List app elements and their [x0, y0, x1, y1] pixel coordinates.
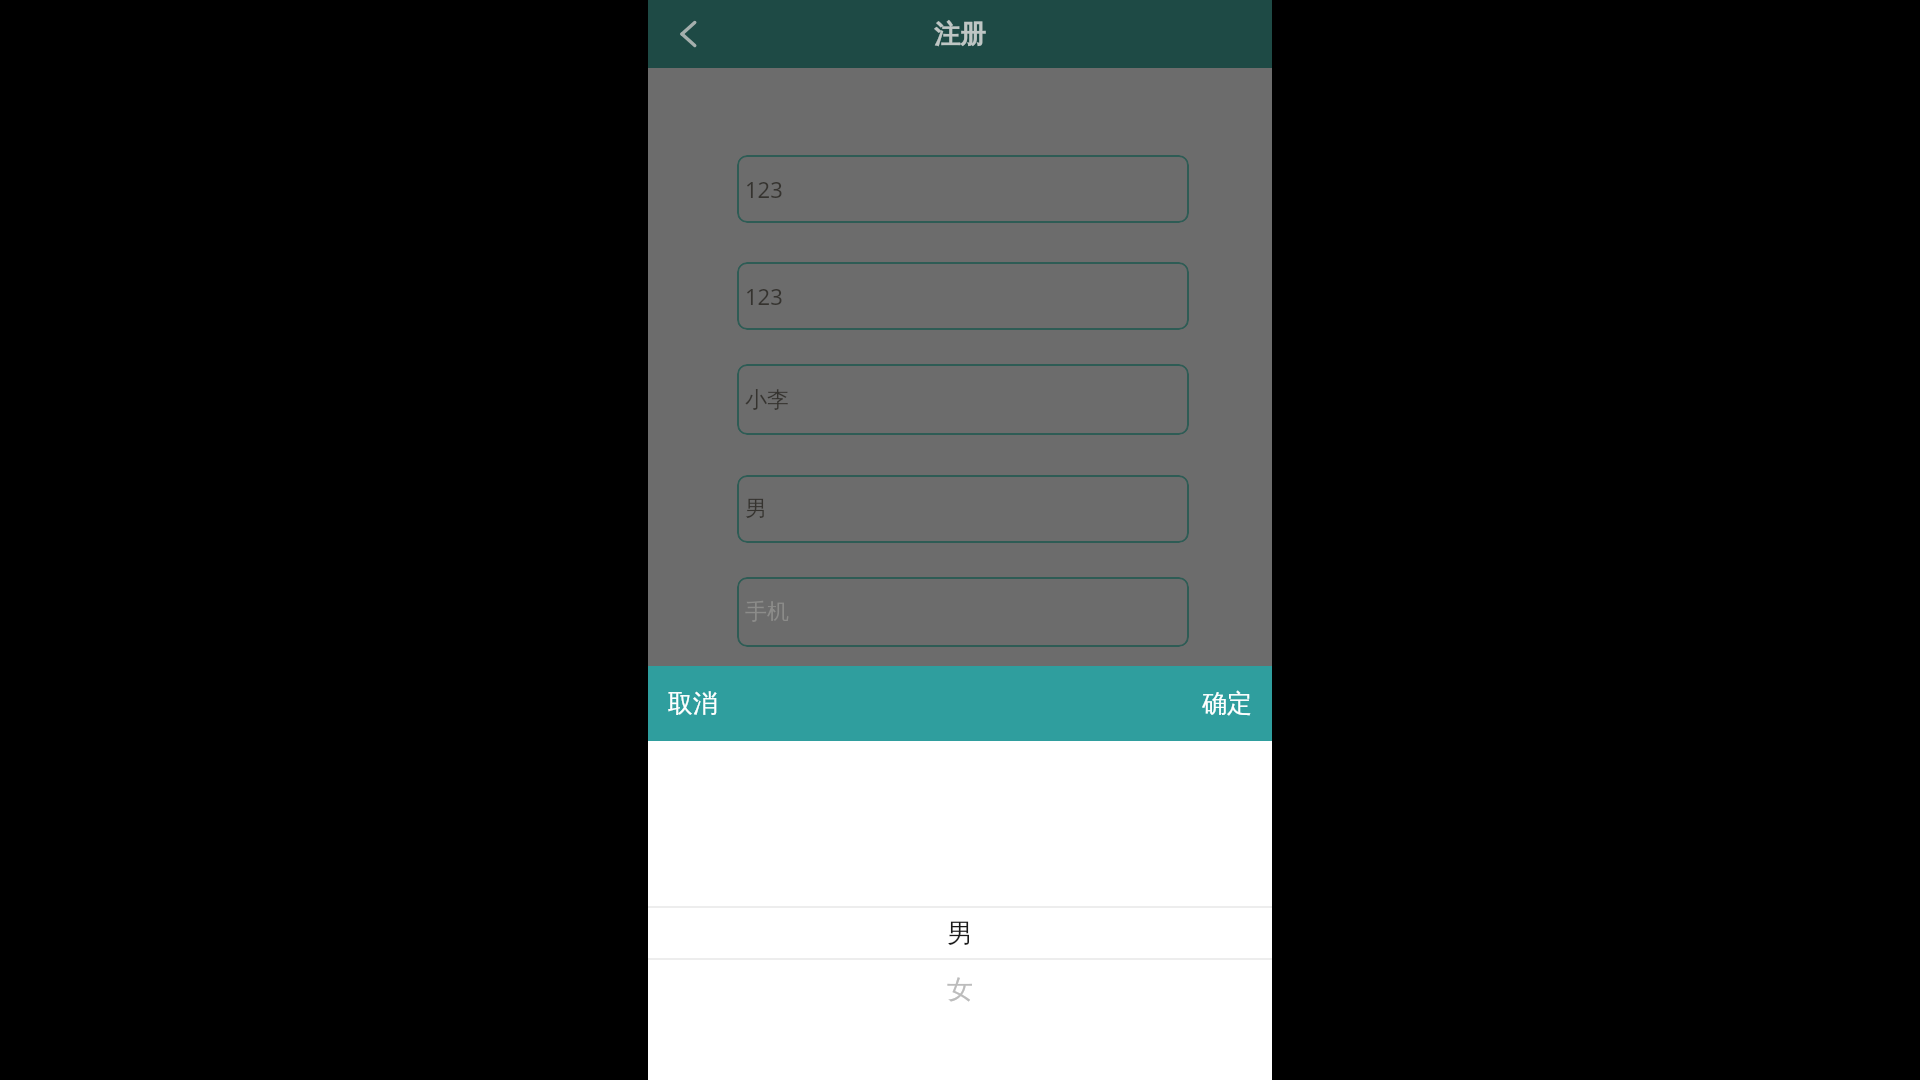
button[interactable]: 确定: [1132, 666, 1272, 741]
button[interactable]: 男: [648, 908, 1272, 958]
button[interactable]: 手机: [737, 577, 1189, 647]
staticText: 取消: [668, 688, 718, 719]
button[interactable]: 女: [648, 960, 1272, 1018]
staticText: 确定: [1202, 688, 1252, 719]
staticText: 手机: [745, 598, 789, 626]
staticText: 123: [745, 281, 783, 311]
button[interactable]: Back: [658, 3, 720, 65]
staticText: 男: [947, 917, 973, 950]
button[interactable]: 123: [737, 155, 1189, 223]
staticText: 小李: [745, 386, 789, 414]
button[interactable]: 取消: [648, 666, 788, 741]
button[interactable]: 123: [737, 262, 1189, 330]
staticText: 123: [745, 174, 783, 204]
staticText: 注册: [934, 18, 986, 51]
button[interactable]: 男: [737, 475, 1189, 543]
staticText: 男: [745, 495, 767, 523]
button[interactable]: 小李: [737, 364, 1189, 435]
staticText: 女: [947, 973, 973, 1006]
